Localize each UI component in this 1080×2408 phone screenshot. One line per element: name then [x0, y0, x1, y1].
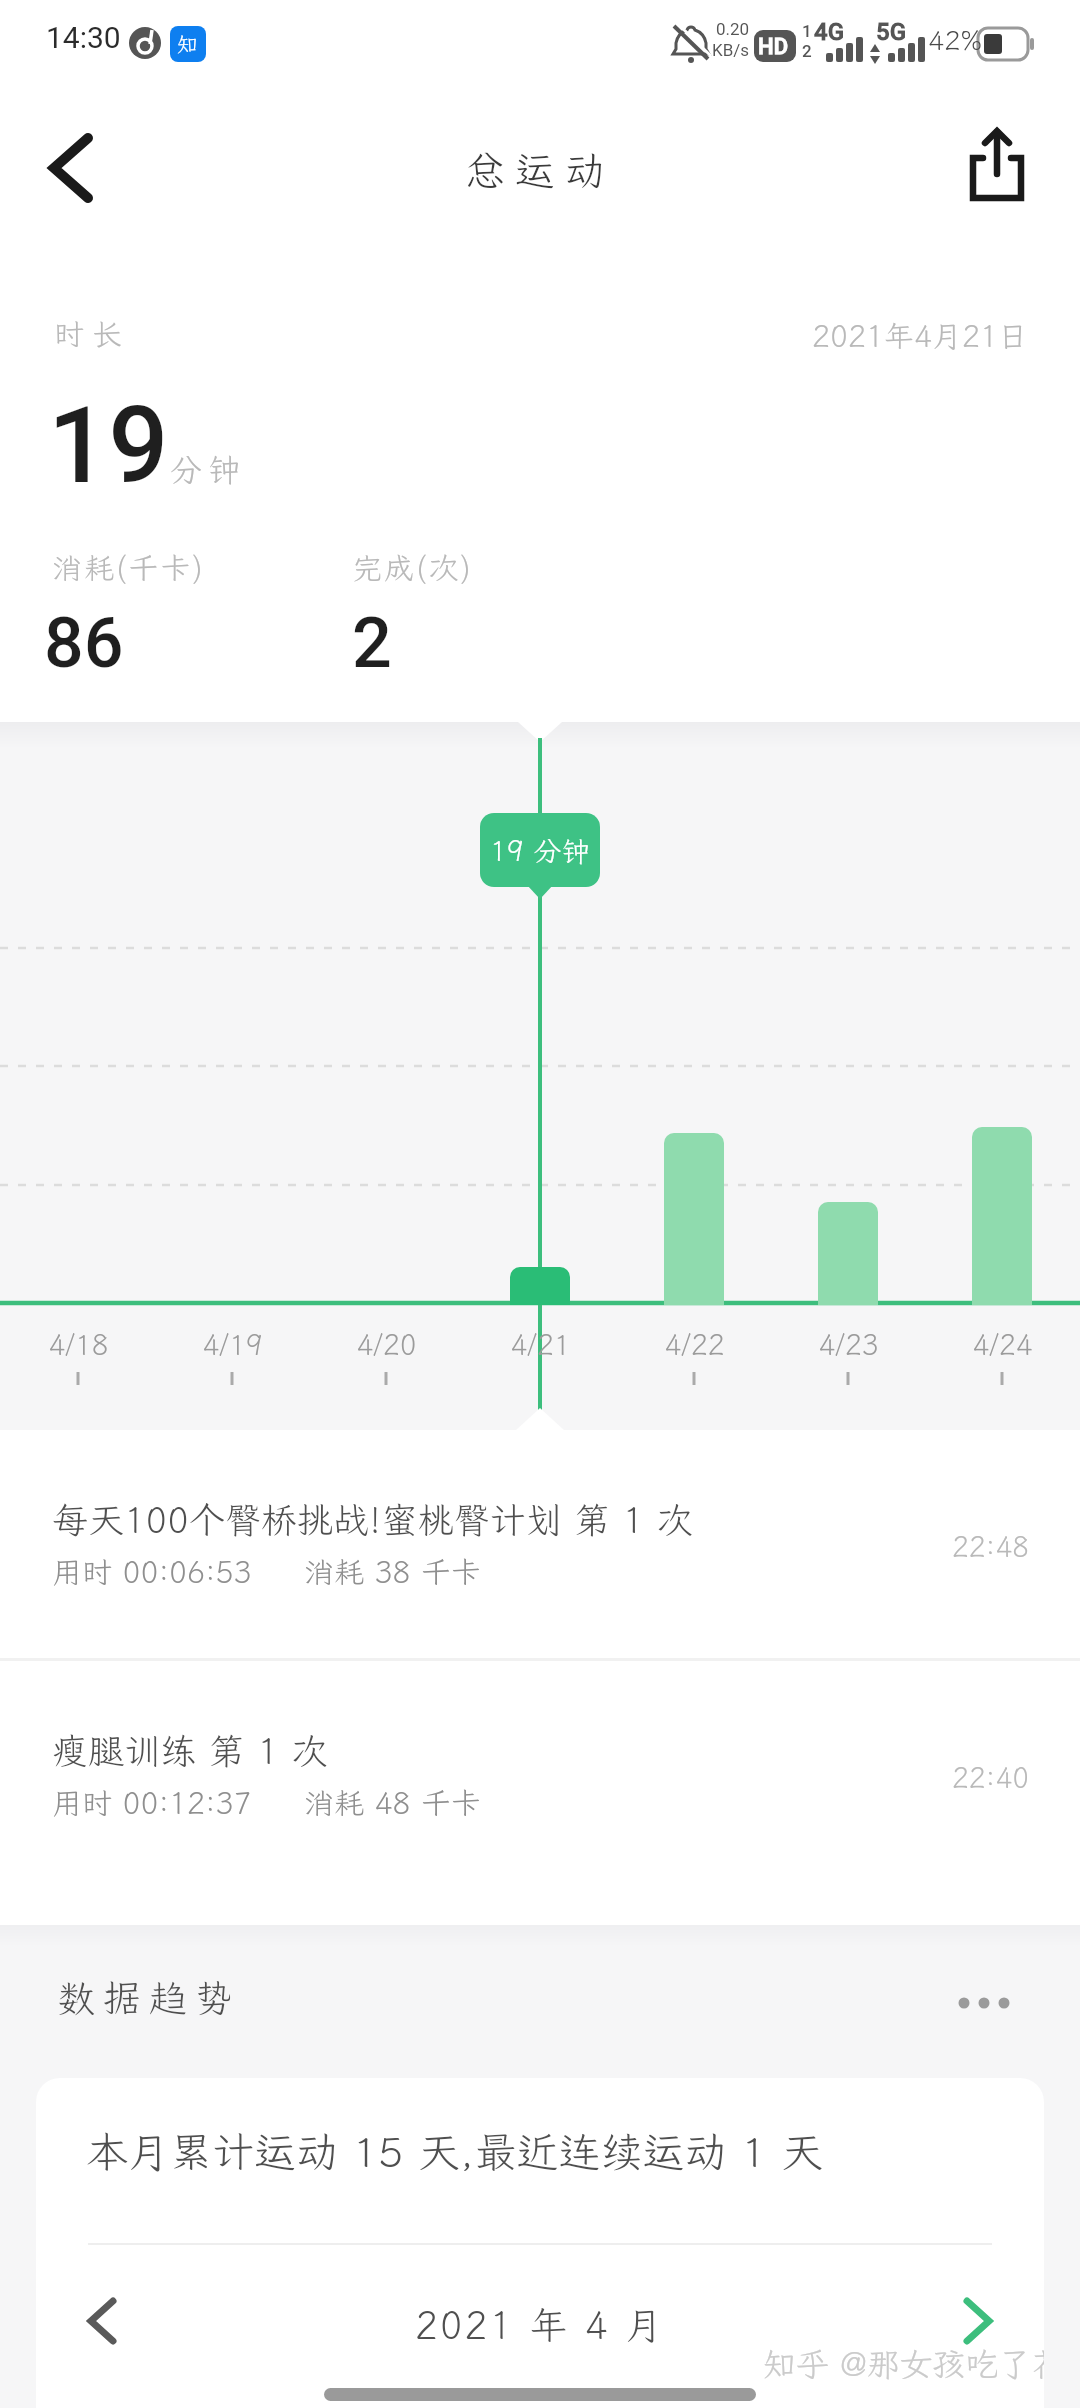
staticText: 知乎 @那女孩吃了花 — [763, 2342, 1044, 2385]
staticText: 86 — [44, 602, 124, 684]
button[interactable]: 4/20 — [336, 1326, 436, 1363]
staticText: KB/s — [712, 40, 750, 60]
staticText: 用时 00:12:37 — [52, 1783, 252, 1823]
staticText: 22:40 — [952, 1759, 1030, 1796]
staticText: 每天100个臀桥挑战!蜜桃臀计划 第 1 次 — [52, 1496, 693, 1543]
staticText: 总运动 — [465, 144, 615, 197]
staticText: 分钟 — [170, 448, 247, 490]
staticText: 4/23 — [818, 1326, 879, 1363]
staticText: 2021年4月21日 — [812, 316, 1028, 356]
staticText: 知 — [177, 30, 198, 58]
button[interactable] — [950, 118, 1040, 208]
staticText: 用时 00:06:53 — [52, 1552, 252, 1592]
button[interactable]: 4/23 — [798, 1326, 898, 1363]
staticText: 消耗 48 千卡 — [304, 1783, 481, 1823]
staticText: 5G — [876, 18, 906, 46]
staticText: 本月累计运动 15 天,最近连续运动 1 天 — [86, 2124, 824, 2179]
staticText: 完成(次) — [352, 548, 473, 588]
staticText: 19 — [48, 384, 169, 508]
button[interactable]: 每天100个臀桥挑战!蜜桃臀计划 第 1 次 — [0, 1430, 1080, 1658]
staticText: 4/21 — [510, 1326, 571, 1363]
staticText: 22:48 — [952, 1528, 1030, 1565]
button[interactable]: 19 分钟 — [480, 813, 600, 887]
staticText: 4G — [814, 18, 844, 46]
button[interactable] — [30, 120, 120, 210]
staticText: HD — [758, 34, 789, 60]
button[interactable]: 瘦腿训练 第 1 次 — [0, 1661, 1080, 1925]
staticText: 瘦腿训练 第 1 次 — [52, 1727, 328, 1774]
staticText: 4/24 — [972, 1326, 1033, 1363]
staticText: 14:30 — [46, 20, 121, 55]
button[interactable]: 4/19 — [182, 1326, 282, 1363]
staticText: 数据趋势 — [57, 1973, 242, 2023]
staticText: 2021 年 4 月 — [415, 2300, 665, 2350]
staticText: 4/22 — [664, 1326, 725, 1363]
button[interactable]: 4/24 — [952, 1326, 1052, 1363]
staticText: 0.20 — [716, 19, 750, 39]
staticText: 19 分钟 — [490, 832, 590, 869]
staticText: 2 — [352, 602, 392, 684]
button[interactable]: 4/18 — [28, 1326, 128, 1363]
staticText: 消耗 38 千卡 — [304, 1552, 481, 1592]
staticText: 4/19 — [202, 1326, 263, 1363]
button[interactable]: 4/21 — [490, 1326, 590, 1363]
staticText: 时长 — [54, 314, 130, 354]
staticText: 2 — [802, 41, 812, 61]
staticText: 4/18 — [48, 1326, 109, 1363]
button[interactable] — [944, 2290, 1008, 2354]
button[interactable] — [950, 1975, 1020, 2025]
staticText: 1 — [802, 21, 812, 41]
staticText: 4/20 — [356, 1326, 417, 1363]
button[interactable]: 4/22 — [644, 1326, 744, 1363]
staticText: 42% — [928, 22, 982, 58]
staticText: 消耗(千卡) — [52, 548, 205, 588]
button[interactable] — [72, 2290, 136, 2354]
